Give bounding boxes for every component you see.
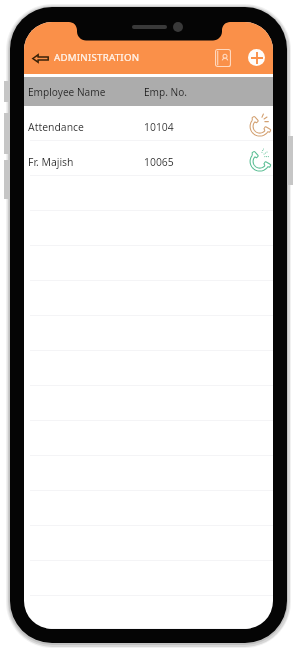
staticText: Fr. Majish <box>28 155 74 169</box>
button[interactable]: Attendance <box>24 106 273 141</box>
staticText: Attendance <box>28 120 84 134</box>
button[interactable]: Back <box>27 45 53 71</box>
button[interactable]: Fr. Majish <box>24 141 273 176</box>
staticText: 10065 <box>144 155 174 169</box>
button[interactable] <box>24 596 273 629</box>
button[interactable]: Call <box>247 148 273 174</box>
staticText: 10104 <box>144 120 174 134</box>
staticText: ADMINISTRATION <box>54 51 140 64</box>
staticText: Employee Name <box>28 85 106 99</box>
button[interactable]: Contacts <box>211 46 235 70</box>
button[interactable]: Call <box>247 113 273 139</box>
button[interactable]: Add <box>248 49 265 66</box>
staticText: Emp. No. <box>144 85 188 99</box>
